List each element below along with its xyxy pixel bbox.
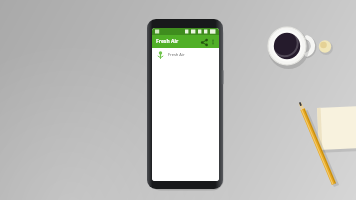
staticText: Fresh Air bbox=[156, 38, 179, 45]
staticText: Fresh Air bbox=[168, 52, 185, 57]
button[interactable]: Share bbox=[199, 37, 209, 47]
button[interactable]: More options bbox=[209, 38, 217, 46]
button[interactable]: Fresh Air bbox=[152, 48, 219, 61]
